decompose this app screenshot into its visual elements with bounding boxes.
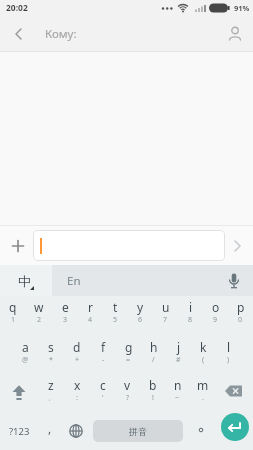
staticText: 2 <box>37 315 42 325</box>
button[interactable] <box>8 24 28 44</box>
button[interactable]: m <box>190 374 215 412</box>
staticText: En <box>67 273 81 289</box>
staticText: + <box>75 355 80 365</box>
staticText: . <box>202 393 204 403</box>
staticText: 、 <box>48 393 55 402</box>
staticText: l <box>227 339 231 355</box>
button[interactable] <box>215 374 253 412</box>
staticText: o <box>212 299 220 315</box>
button[interactable]: q <box>0 296 26 336</box>
staticText: @ <box>22 355 29 365</box>
button[interactable]: v <box>115 374 140 412</box>
staticText: ) <box>227 355 230 365</box>
staticText: r <box>88 299 93 315</box>
button[interactable]: t <box>103 296 128 336</box>
staticText: a <box>22 339 29 355</box>
staticText: f <box>101 339 106 355</box>
staticText: i <box>189 299 193 315</box>
button[interactable] <box>62 412 89 450</box>
staticText: c <box>100 377 106 393</box>
staticText: y <box>137 299 144 315</box>
button[interactable] <box>9 237 27 255</box>
staticText: t <box>113 299 118 315</box>
button[interactable]: i <box>178 296 203 336</box>
staticText: b <box>149 377 157 393</box>
button[interactable] <box>215 412 253 450</box>
staticText: g <box>125 339 133 355</box>
staticText: , <box>48 420 52 436</box>
button[interactable]: h <box>141 336 166 374</box>
staticText: 拼音 <box>129 426 147 437</box>
button[interactable]: l <box>216 336 241 374</box>
staticText: Кому: <box>45 26 77 42</box>
staticText: 3 <box>63 315 68 325</box>
staticText: 6 <box>138 315 143 325</box>
button[interactable]: r <box>78 296 103 336</box>
staticText: * <box>49 355 53 365</box>
button[interactable]: x <box>64 374 90 412</box>
staticText: - <box>102 355 105 365</box>
staticText: 1 <box>11 315 16 325</box>
button[interactable]: g <box>116 336 141 374</box>
button[interactable] <box>0 374 38 412</box>
staticText: 20:02 <box>6 2 28 14</box>
staticText: 7 <box>163 315 168 325</box>
staticText: p <box>237 299 245 315</box>
staticText: s <box>48 339 54 355</box>
staticText: m <box>197 377 209 393</box>
button[interactable]: a <box>12 336 38 374</box>
staticText: ~ <box>175 393 180 403</box>
staticText: w <box>34 299 44 315</box>
staticText: ( <box>202 355 205 365</box>
staticText: z <box>48 377 54 393</box>
button[interactable] <box>183 412 215 450</box>
button[interactable]: s <box>38 336 64 374</box>
staticText: j <box>177 339 181 355</box>
button[interactable]: n <box>165 374 190 412</box>
staticText: 8 <box>188 315 193 325</box>
staticText: h <box>150 339 158 355</box>
button[interactable]: f <box>90 336 116 374</box>
staticText: ? <box>126 393 130 403</box>
button[interactable]: En <box>52 265 96 296</box>
staticText: q <box>9 299 17 315</box>
staticText: 9 <box>213 315 218 325</box>
button[interactable] <box>225 24 245 44</box>
button[interactable]: e <box>52 296 78 336</box>
staticText: ' <box>102 393 104 403</box>
staticText: # <box>176 355 181 365</box>
staticText: d <box>73 339 81 355</box>
button[interactable]: j <box>166 336 191 374</box>
button[interactable]: y <box>128 296 153 336</box>
button[interactable] <box>33 230 225 261</box>
button[interactable]: w <box>26 296 52 336</box>
button[interactable]: k <box>191 336 216 374</box>
button[interactable] <box>228 237 246 255</box>
staticText: n <box>174 377 182 393</box>
staticText: v <box>124 377 131 393</box>
button[interactable] <box>215 265 253 296</box>
button[interactable]: b <box>140 374 165 412</box>
button[interactable]: , <box>38 412 62 450</box>
staticText: 91% <box>234 3 250 13</box>
button[interactable]: o <box>203 296 228 336</box>
staticText: : <box>76 393 78 403</box>
button[interactable]: p <box>228 296 253 336</box>
button[interactable]: 拼音 <box>93 420 183 442</box>
staticText: x <box>74 377 81 393</box>
staticText: k <box>200 339 207 355</box>
button[interactable]: 中 <box>0 265 52 296</box>
button[interactable]: c <box>90 374 115 412</box>
button[interactable]: u <box>153 296 178 336</box>
staticText: 中 <box>18 273 31 289</box>
staticText: / <box>152 355 155 365</box>
button[interactable]: d <box>64 336 90 374</box>
staticText: 4 <box>88 315 93 325</box>
staticText: 0 <box>238 315 243 325</box>
staticText: = <box>126 355 131 365</box>
staticText: ?123 <box>9 425 30 438</box>
staticText: 5 <box>113 315 118 325</box>
button[interactable]: ?123 <box>0 412 38 450</box>
staticText: ! <box>152 393 154 403</box>
button[interactable]: z <box>38 374 64 412</box>
